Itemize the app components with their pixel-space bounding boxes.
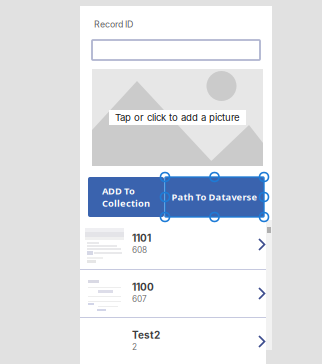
staticText: Test2: [132, 329, 160, 341]
button[interactable]: Path To Dataverse: [165, 177, 264, 217]
staticText: 1101: [132, 232, 151, 244]
staticText: Tap or click to add a picture: [115, 112, 240, 123]
button[interactable]: 1100: [80, 270, 266, 318]
staticText: 607: [132, 294, 147, 304]
staticText: 2: [132, 342, 137, 352]
staticText: Record ID: [94, 19, 133, 30]
staticText: 608: [132, 245, 147, 255]
button[interactable]: ADD To Collection: [88, 177, 164, 217]
staticText: Path To Dataverse: [171, 191, 257, 203]
button[interactable]: Test2: [80, 318, 266, 364]
staticText: 1100: [132, 281, 154, 293]
staticText: ADD To Collection: [102, 185, 150, 209]
button[interactable]: 1101: [80, 221, 266, 269]
